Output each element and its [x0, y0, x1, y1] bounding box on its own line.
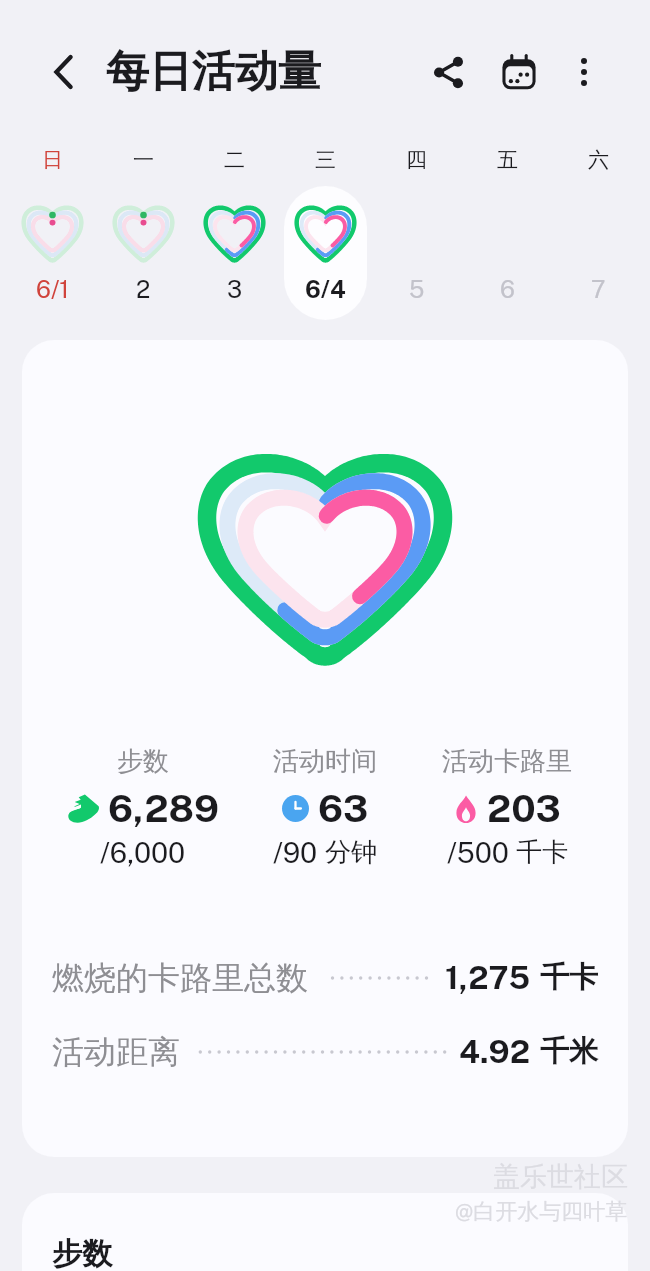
- staticText: 1,275: [445, 959, 531, 997]
- staticText: 5: [409, 275, 425, 303]
- staticText: 五: [497, 147, 518, 173]
- staticText: /500: [447, 836, 509, 869]
- staticText: 三: [315, 147, 336, 173]
- staticText: 7: [591, 275, 606, 303]
- staticText: 6,289: [108, 786, 219, 831]
- staticText: 6/1: [36, 275, 70, 303]
- staticText: 四: [406, 147, 427, 173]
- button[interactable]: Share: [420, 44, 476, 100]
- staticText: 6: [500, 275, 515, 303]
- button[interactable]: 7: [557, 186, 640, 320]
- staticText: 千卡: [540, 959, 598, 996]
- staticText: 63: [318, 786, 369, 831]
- staticText: 二: [224, 147, 245, 173]
- staticText: 一: [133, 147, 154, 173]
- staticText: 千米: [540, 1033, 598, 1070]
- staticText: 2: [136, 275, 151, 303]
- staticText: 六: [588, 147, 609, 173]
- staticText: /90: [273, 836, 318, 869]
- staticText: 燃烧的卡路里总数: [52, 958, 308, 998]
- staticText: 分钟: [325, 836, 377, 869]
- staticText: 千卡: [516, 836, 568, 869]
- staticText: 盖乐世社区: [493, 1160, 628, 1194]
- staticText: @白开水与四叶草: [455, 1198, 628, 1226]
- staticText: 每日活动量: [106, 45, 321, 99]
- button[interactable]: Calendar: [491, 44, 547, 100]
- staticText: 步数: [52, 1235, 112, 1271]
- staticText: 日: [42, 147, 63, 173]
- staticText: 活动时间: [273, 745, 377, 778]
- staticText: 203: [487, 786, 561, 831]
- button[interactable]: 6/4: [284, 186, 367, 320]
- staticText: 活动卡路里: [442, 745, 572, 778]
- button[interactable]: More options: [560, 44, 608, 100]
- staticText: 6/4: [305, 275, 346, 303]
- staticText: 活动距离: [52, 1032, 180, 1072]
- button[interactable]: Back: [35, 44, 91, 100]
- staticText: 4.92: [459, 1033, 531, 1071]
- button[interactable]: 5: [375, 186, 458, 320]
- staticText: 3: [227, 275, 243, 303]
- button[interactable]: 6/1: [11, 186, 94, 320]
- button[interactable]: 3: [193, 186, 276, 320]
- button[interactable]: 每日活动量: [106, 44, 321, 100]
- staticText: /6,000: [100, 836, 186, 869]
- button[interactable]: 2: [102, 186, 185, 320]
- staticText: 步数: [117, 745, 169, 778]
- button[interactable]: 6: [466, 186, 549, 320]
